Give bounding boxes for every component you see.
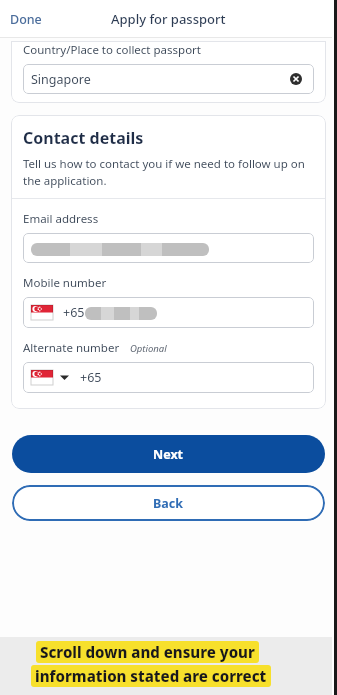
button[interactable]: Back [12, 485, 325, 521]
staticText: Back [153, 495, 184, 512]
staticText: +65 [63, 304, 85, 321]
button[interactable] [23, 233, 314, 263]
button[interactable]: Next [12, 435, 325, 473]
button[interactable]: +65 [23, 362, 314, 393]
button[interactable]: Singapore [23, 64, 314, 94]
staticText: Contact details [23, 127, 144, 149]
button[interactable]: Clear [286, 69, 306, 89]
staticText: Mobile number [23, 275, 107, 291]
staticText: Singapore [31, 71, 91, 88]
button[interactable]: +65 [23, 297, 314, 328]
button[interactable]: Done [6, 7, 46, 32]
staticText: information stated are correct [35, 666, 267, 686]
staticText: +65 [80, 369, 102, 386]
staticText: Done [10, 11, 42, 28]
staticText: Apply for passport [111, 10, 226, 28]
staticText: Next [153, 446, 184, 463]
staticText: Alternate number [23, 340, 120, 356]
staticText: Country/Place to collect passport [23, 42, 201, 58]
staticText: Tell us how to contact you if we need to… [23, 156, 314, 188]
staticText: Optional [130, 342, 167, 355]
staticText: Email address [23, 211, 99, 227]
staticText: Scroll down and ensure your [40, 642, 255, 662]
